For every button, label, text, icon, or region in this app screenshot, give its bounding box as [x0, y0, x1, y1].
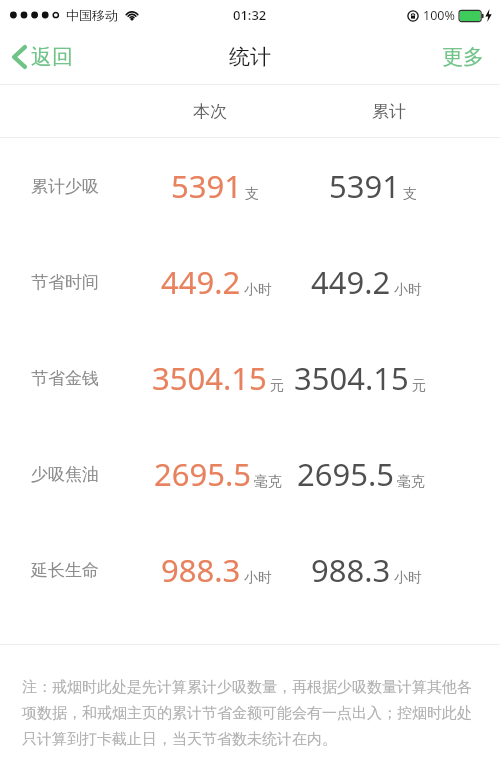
button[interactable]: 返回: [0, 30, 87, 84]
staticText: 毫克: [397, 473, 425, 491]
staticText: 统计: [229, 44, 271, 70]
staticText: 元: [270, 377, 284, 395]
button[interactable]: 节省时间: [0, 234, 500, 330]
staticText: 5391: [171, 165, 242, 207]
staticText: 449.2: [161, 261, 241, 303]
staticText: 2695.5: [154, 453, 251, 495]
staticText: 小时: [244, 281, 272, 299]
staticText: 节省时间: [31, 272, 99, 293]
staticText: 3504.15: [152, 357, 267, 399]
staticText: 更多: [442, 44, 484, 70]
staticText: 毫克: [254, 473, 282, 491]
staticText: 小时: [394, 569, 422, 587]
staticText: 3504.15: [294, 357, 409, 399]
staticText: 少吸焦油: [31, 464, 99, 485]
staticText: 元: [412, 377, 426, 395]
button[interactable]: 少吸焦油: [0, 426, 500, 522]
staticText: 2695.5: [297, 453, 394, 495]
staticText: 注：戒烟时此处是先计算累计少吸数量，再根据少吸数量计算其他各项数据，和戒烟主页的…: [22, 678, 476, 749]
staticText: 累计少吸: [31, 176, 99, 197]
staticText: 中国移动: [66, 7, 118, 23]
staticText: 449.2: [311, 261, 391, 303]
button[interactable]: 延长生命: [0, 522, 500, 618]
button[interactable]: 节省金钱: [0, 330, 500, 426]
staticText: 累计: [372, 101, 406, 122]
button[interactable]: 更多: [426, 30, 500, 84]
staticText: 小时: [394, 281, 422, 299]
staticText: 支: [245, 185, 259, 203]
staticText: 节省金钱: [31, 368, 99, 389]
staticText: 100%: [423, 7, 455, 24]
button[interactable]: 累计少吸: [0, 138, 500, 234]
staticText: 小时: [244, 569, 272, 587]
staticText: 本次: [193, 101, 227, 122]
staticText: 01:32: [233, 6, 267, 24]
staticText: 延长生命: [31, 560, 99, 581]
staticText: 988.3: [161, 549, 241, 591]
staticText: 返回: [31, 44, 73, 70]
staticText: 988.3: [311, 549, 391, 591]
staticText: 5391: [329, 165, 400, 207]
staticText: 支: [403, 185, 417, 203]
